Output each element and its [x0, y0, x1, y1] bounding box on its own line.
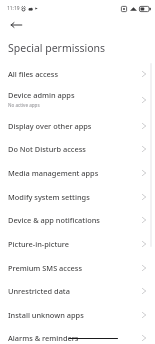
button[interactable]: Install unknown apps: [0, 303, 155, 327]
button[interactable]: Do Not Disturb access: [0, 137, 155, 161]
button[interactable]: All files access: [0, 62, 155, 86]
button[interactable]: Alarms & reminders: [0, 326, 155, 344]
button[interactable]: Display over other apps: [0, 114, 155, 138]
staticText: Install unknown apps: [8, 310, 84, 320]
button[interactable]: Premium SMS access: [0, 256, 155, 280]
staticText: Modify system settings: [8, 192, 90, 202]
button[interactable]: Unrestricted data: [0, 279, 155, 303]
staticText: Alarms & reminders: [8, 333, 79, 343]
staticText: Device admin apps: [8, 90, 75, 100]
staticText: No active apps: [8, 102, 40, 108]
staticText: Display over other apps: [8, 121, 92, 131]
button[interactable]: Picture-in-picture: [0, 232, 155, 256]
staticText: 11:19: [7, 5, 20, 12]
staticText: Picture-in-picture: [8, 239, 70, 249]
staticText: Device & app notifications: [8, 215, 100, 225]
staticText: Unrestricted data: [8, 286, 70, 296]
staticText: Special permissions: [8, 41, 106, 55]
staticText: All files access: [8, 69, 59, 79]
button[interactable]: Device admin apps: [0, 86, 155, 114]
button[interactable]: Media management apps: [0, 161, 155, 185]
staticText: Premium SMS access: [8, 263, 83, 273]
button[interactable]: Back: [6, 14, 26, 34]
staticText: Media management apps: [8, 168, 99, 178]
button[interactable]: Modify system settings: [0, 185, 155, 209]
button[interactable]: Device & app notifications: [0, 208, 155, 232]
staticText: Do Not Disturb access: [8, 144, 86, 154]
